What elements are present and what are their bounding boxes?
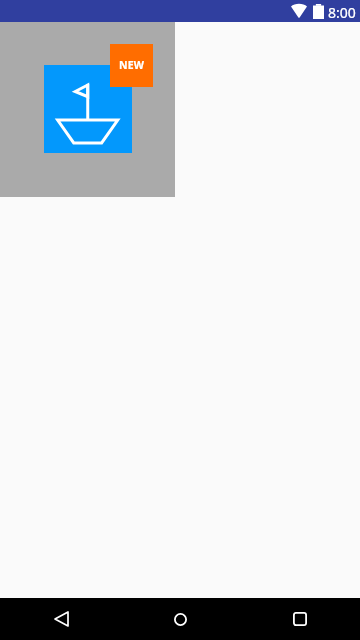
- button[interactable]: NEW: [110, 44, 153, 87]
- staticText: NEW: [119, 58, 145, 72]
- button[interactable]: Recents: [240, 598, 360, 640]
- button[interactable]: Home: [120, 598, 240, 640]
- staticText: 8:00: [328, 3, 356, 22]
- button[interactable]: Back: [0, 598, 120, 640]
- button[interactable]: Sailboat: [44, 65, 132, 153]
